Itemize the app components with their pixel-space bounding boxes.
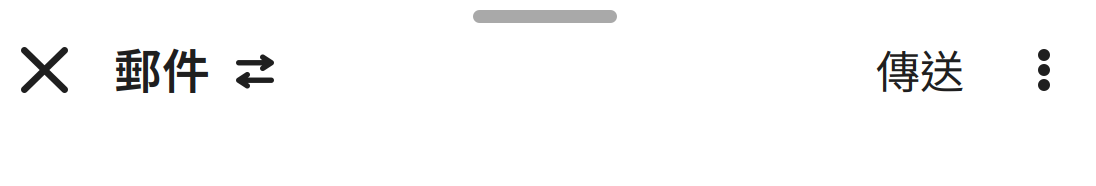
button[interactable]: Close [0, 23, 114, 117]
staticText: 傳送 [876, 37, 964, 101]
staticText: 郵件 [114, 33, 210, 103]
button[interactable]: 郵件 [114, 23, 273, 117]
button[interactable]: More options [1012, 23, 1096, 117]
button[interactable]: 傳送 [854, 23, 1012, 117]
